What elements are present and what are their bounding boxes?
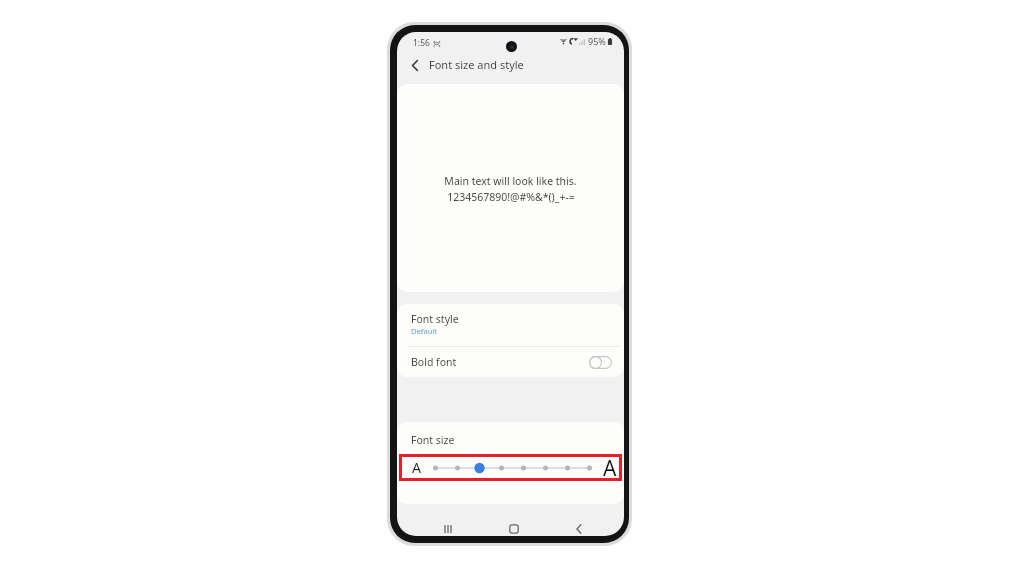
staticText: 1:56 bbox=[413, 37, 430, 49]
button[interactable]: Font style bbox=[397, 304, 624, 346]
staticText: Main text will look like this. bbox=[444, 174, 577, 188]
button[interactable]: Navigate up bbox=[405, 55, 425, 75]
staticText: Bold font bbox=[411, 355, 457, 369]
button[interactable]: Bold font bbox=[397, 347, 624, 377]
button[interactable]: Home bbox=[481, 522, 546, 536]
staticText: Font style bbox=[411, 312, 459, 326]
button[interactable]: Font size slider bbox=[422, 459, 603, 477]
staticText: A bbox=[603, 454, 617, 481]
staticText: Font size and style bbox=[429, 57, 524, 72]
button[interactable]: Recent apps bbox=[415, 522, 481, 536]
staticText: 95% bbox=[588, 35, 606, 47]
button[interactable]: Bold font toggle bbox=[589, 356, 612, 369]
staticText: Default bbox=[411, 326, 438, 336]
staticText: A bbox=[412, 458, 422, 477]
staticText: 1234567890!@#%&*()_+-= bbox=[447, 190, 575, 204]
button[interactable]: Back bbox=[546, 522, 611, 536]
staticText: Font size bbox=[411, 433, 455, 447]
